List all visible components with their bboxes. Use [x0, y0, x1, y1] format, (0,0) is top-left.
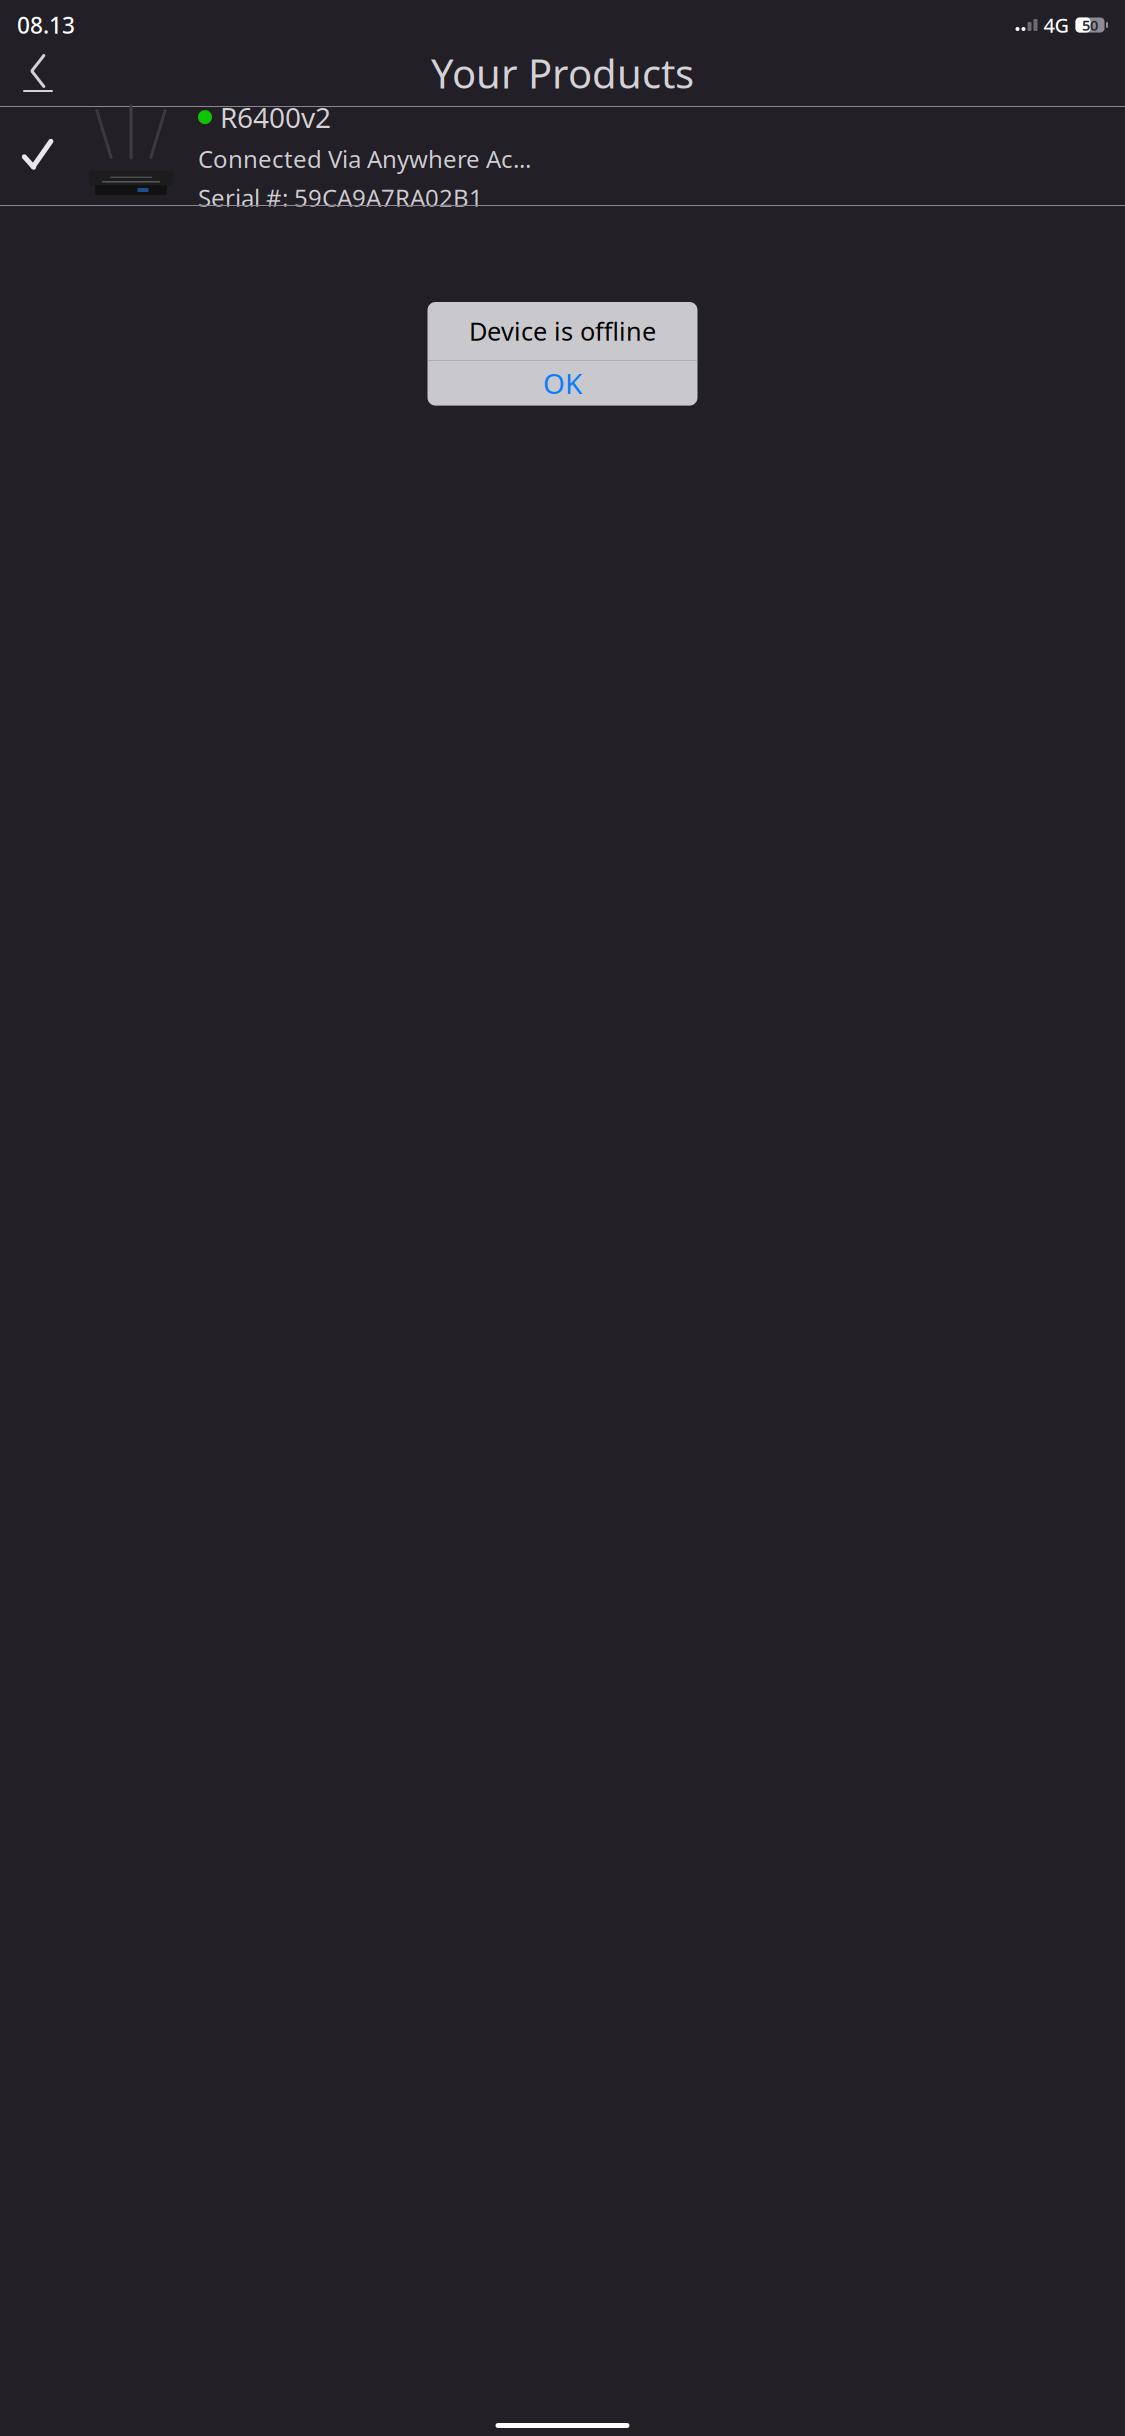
staticText: 4G — [1043, 12, 1069, 38]
staticText: Device is offline — [469, 314, 656, 348]
staticText: Connected Via Anywhere Ac... — [198, 143, 531, 175]
staticText: Your Products — [431, 46, 694, 99]
button[interactable]: Back — [10, 49, 66, 97]
button[interactable]: R6400v2 — [0, 107, 1125, 205]
button[interactable]: OK — [427, 361, 697, 406]
staticText: 08.13 — [17, 10, 75, 40]
staticText: R6400v2 — [220, 98, 331, 136]
staticText: 50 — [1082, 15, 1098, 35]
staticText: OK — [543, 364, 582, 402]
staticText: Serial #: 59CA9A7RA02B1 — [198, 182, 483, 213]
